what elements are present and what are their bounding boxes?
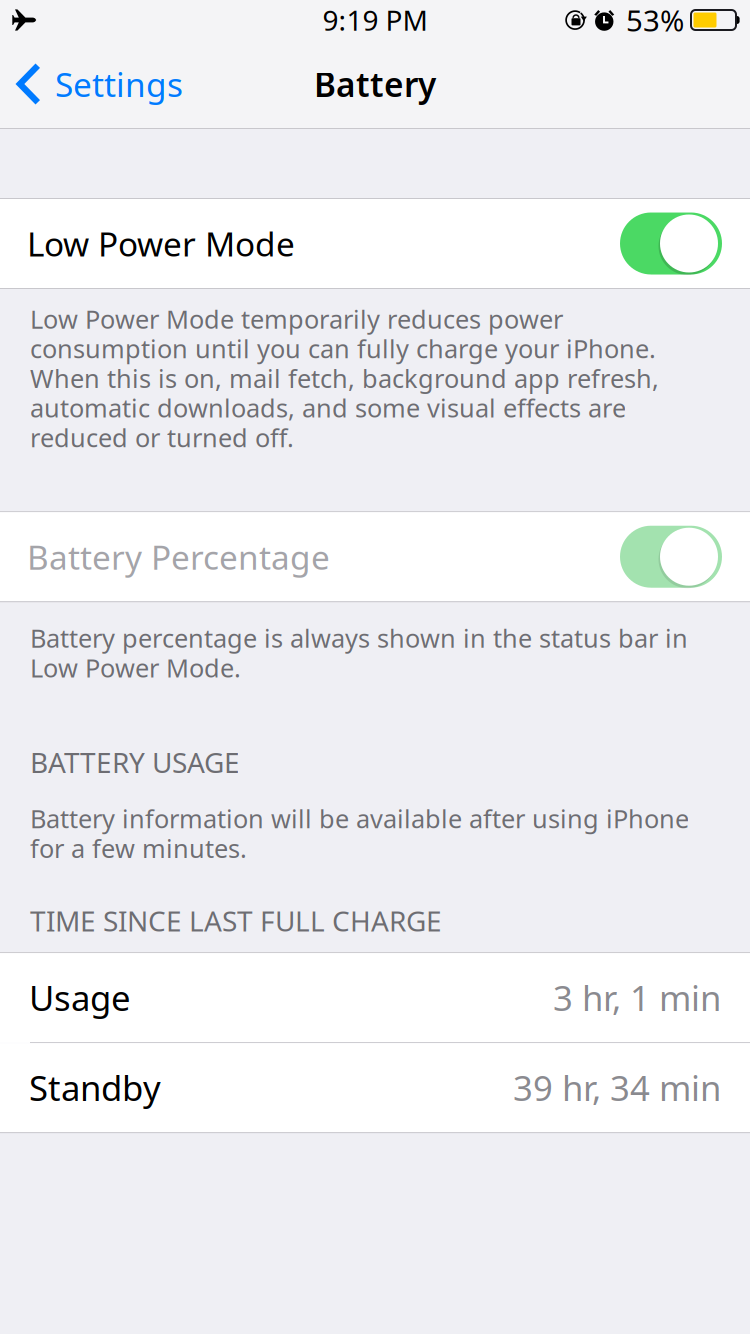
staticText: BATTERY USAGE <box>30 743 240 781</box>
staticText: 39 hr, 34 min <box>513 1065 721 1111</box>
staticText: Standby <box>29 1065 161 1111</box>
staticText: Low Power Mode temporarily reduces power… <box>30 302 659 454</box>
button[interactable]: Battery Percentage <box>0 512 750 601</box>
button[interactable]: Standby <box>0 1043 750 1132</box>
button[interactable]: Low Power Mode <box>0 199 750 288</box>
staticText: TIME SINCE LAST FULL CHARGE <box>30 902 442 939</box>
staticText: Battery percentage is always shown in th… <box>30 621 688 684</box>
staticText: Battery Percentage <box>27 535 330 579</box>
staticText: 3 hr, 1 min <box>553 975 721 1021</box>
staticText: Usage <box>29 975 131 1021</box>
staticText: Low Power Mode <box>27 221 295 266</box>
staticText: Battery <box>314 62 436 106</box>
staticText: Settings <box>55 62 183 106</box>
staticText: 9:19 PM <box>322 1 427 39</box>
button[interactable]: Usage <box>0 953 750 1042</box>
button[interactable]: Settings <box>0 40 193 128</box>
staticText: 53% <box>626 0 684 39</box>
staticText: Battery information will be available af… <box>30 802 689 865</box>
